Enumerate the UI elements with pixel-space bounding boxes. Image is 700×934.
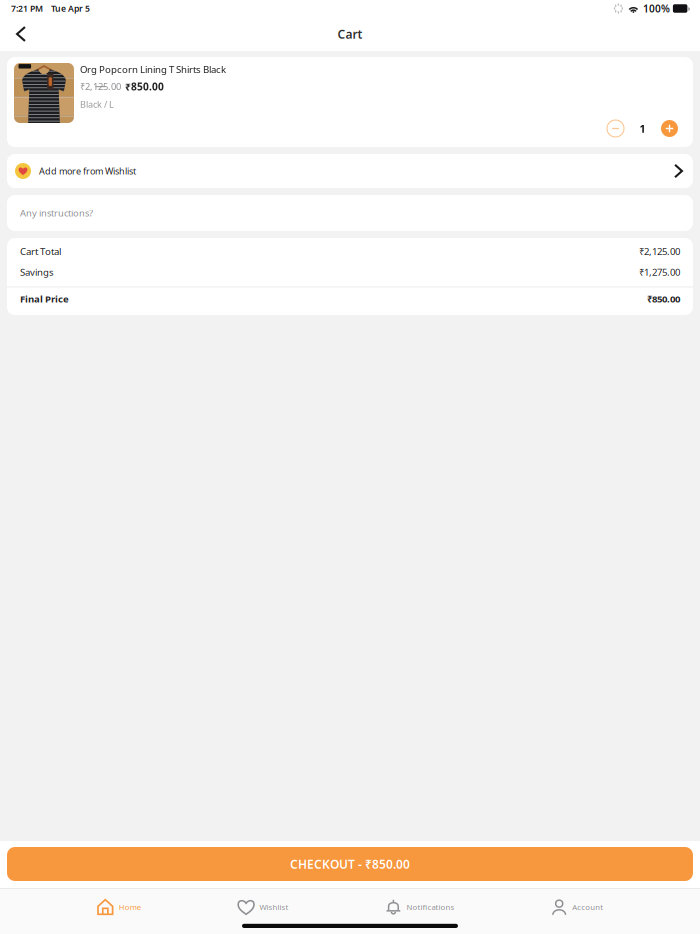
button[interactable]: CHECKOUT - ₹850.00 — [0, 841, 700, 881]
staticText: Add more from Wishlist — [39, 165, 136, 177]
button[interactable]: Decrease quantity — [607, 120, 624, 137]
staticText: ₹2,125.00 — [639, 245, 680, 258]
button[interactable]: Notifications — [385, 892, 454, 922]
staticText: Any instructions? — [20, 207, 93, 219]
button[interactable]: Any instructions? — [7, 195, 693, 231]
staticText: Home — [119, 902, 141, 912]
button[interactable]: Account — [551, 892, 603, 922]
staticText: Wishlist — [260, 902, 289, 912]
button[interactable]: Increase quantity — [661, 120, 678, 137]
staticText: CHECKOUT - ₹850.00 — [290, 856, 410, 872]
button[interactable]: Home — [97, 892, 141, 922]
staticText: Cart — [337, 26, 362, 42]
staticText: Account — [572, 902, 603, 912]
button[interactable]: Add more from Wishlist — [7, 154, 693, 188]
staticText: Notifications — [406, 902, 454, 912]
staticText: ₹1,275.00 — [639, 266, 680, 278]
staticText: 100% — [643, 2, 670, 15]
staticText: 7:21 PM — [11, 3, 43, 14]
staticText: Savings — [20, 266, 54, 278]
staticText: ₹850.00 — [125, 80, 164, 93]
staticText: Cart Total — [20, 245, 61, 258]
staticText: Black / L — [80, 98, 114, 110]
staticText: ₹850.00 — [647, 292, 680, 305]
staticText: Final Price — [20, 292, 69, 305]
staticText: 1 — [639, 121, 645, 136]
staticText: Tue Apr 5 — [51, 3, 90, 14]
button[interactable]: Wishlist — [238, 892, 289, 922]
staticText: Org Popcorn Lining T Shirts Black — [80, 63, 226, 76]
button[interactable]: Back — [4, 18, 38, 50]
staticText: ₹2,125.00 — [80, 80, 121, 93]
